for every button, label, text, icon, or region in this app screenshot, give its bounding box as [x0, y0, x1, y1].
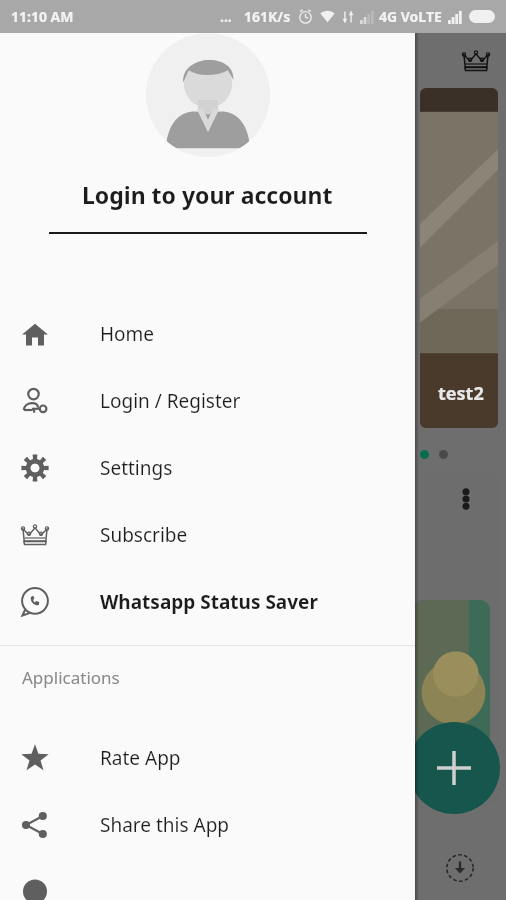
button[interactable]: Settings	[0, 434, 415, 501]
staticText: ...	[220, 7, 232, 26]
staticText: test2	[438, 381, 484, 406]
button[interactable]: Rate App	[0, 724, 415, 791]
staticText: Share this App	[100, 812, 230, 838]
staticText: 4G VoLTE	[379, 7, 442, 26]
button[interactable]: Share this App	[0, 791, 415, 858]
staticText: Subscribe	[100, 522, 188, 548]
staticText: Home	[100, 321, 155, 347]
button[interactable]: Subscribe	[0, 501, 415, 568]
staticText: Login / Register	[100, 388, 241, 414]
staticText: Settings	[100, 455, 173, 481]
staticText: Whatsapp Status Saver	[100, 589, 318, 615]
button[interactable]: Add	[408, 722, 500, 814]
button[interactable]	[0, 858, 415, 900]
button[interactable]: Downloads	[440, 848, 480, 888]
button[interactable]: More options	[452, 485, 480, 513]
button[interactable]: Subscribe	[454, 39, 498, 83]
staticText: 11:10 AM	[11, 7, 74, 26]
staticText: Login to your account	[82, 179, 333, 210]
button[interactable]: Whatsapp Status Saver	[0, 568, 415, 635]
staticText: Rate App	[100, 745, 181, 771]
button[interactable]: Login / Register	[0, 367, 415, 434]
staticText: 161K/s	[244, 7, 291, 26]
button[interactable]: Home	[0, 300, 415, 367]
button[interactable]: Profile picture	[146, 33, 270, 157]
staticText: Applications	[22, 666, 120, 689]
